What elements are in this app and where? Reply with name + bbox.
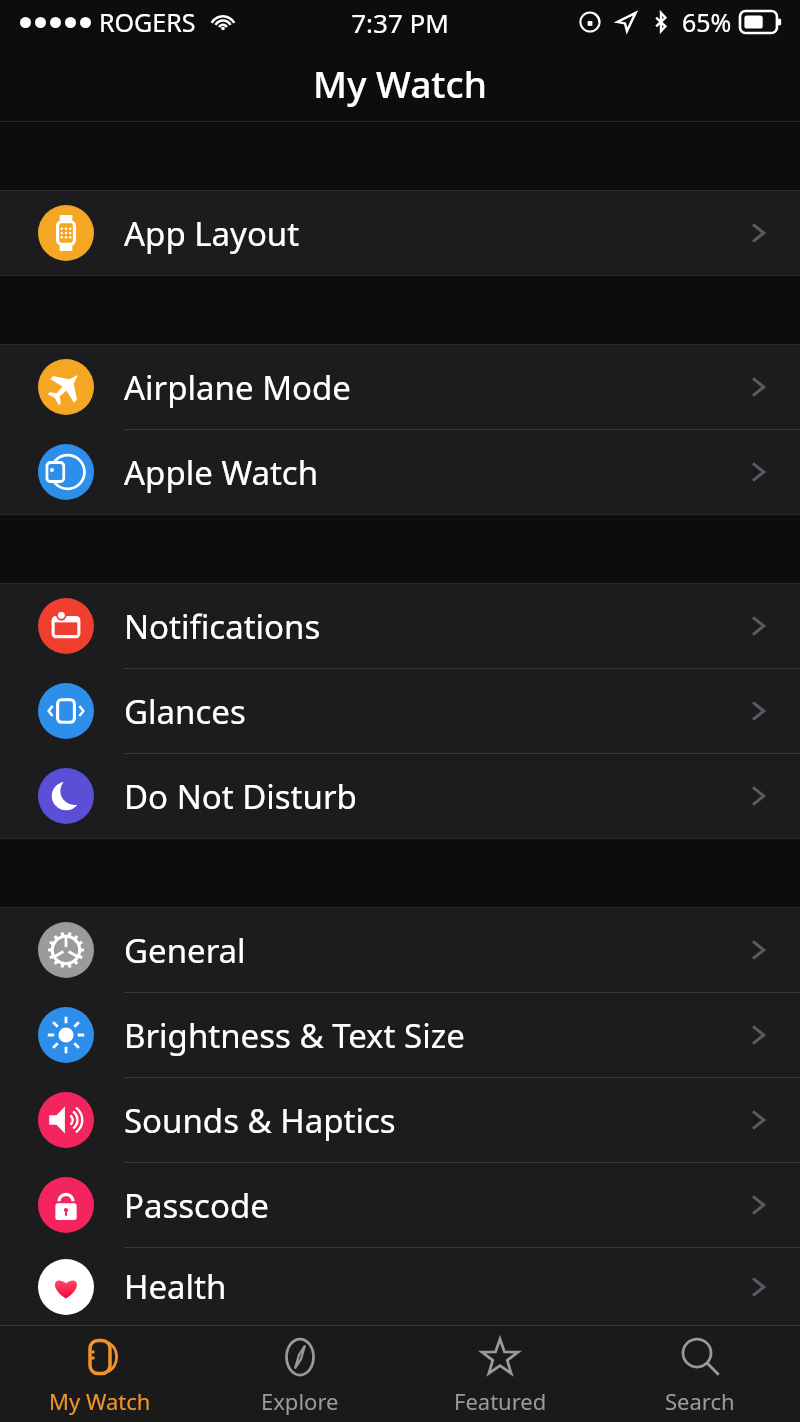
staticText: Explore: [261, 1386, 339, 1416]
staticText: 65%: [682, 5, 732, 39]
button[interactable]: App Layout: [0, 191, 800, 275]
staticText: Do Not Disturb: [124, 774, 357, 819]
button[interactable]: Glances: [0, 669, 800, 753]
button[interactable]: General: [0, 908, 800, 992]
staticText: ROGERS: [99, 5, 196, 39]
button[interactable]: Airplane Mode: [0, 345, 800, 429]
button[interactable]: Notifications: [0, 584, 800, 668]
staticText: Featured: [454, 1386, 547, 1416]
other: My Watch: [75, 1332, 125, 1382]
button[interactable]: Featured: [400, 1326, 600, 1422]
button[interactable]: Brightness & Text Size: [0, 993, 800, 1077]
staticText: Notifications: [124, 604, 321, 649]
staticText: Sounds & Haptics: [124, 1098, 396, 1143]
button[interactable]: Sounds & Haptics: [0, 1078, 800, 1162]
other: Search: [675, 1332, 725, 1382]
button[interactable]: Explore: [200, 1326, 400, 1422]
staticText: Passcode: [124, 1183, 269, 1228]
button[interactable]: Apple Watch: [0, 430, 800, 514]
staticText: Glances: [124, 689, 246, 734]
staticText: Health: [124, 1264, 227, 1309]
button[interactable]: Passcode: [0, 1163, 800, 1247]
staticText: My Watch: [313, 58, 487, 108]
staticText: My Watch: [49, 1386, 151, 1416]
other: Explore: [275, 1332, 325, 1382]
staticText: 7:37 PM: [351, 5, 449, 40]
staticText: App Layout: [124, 211, 300, 256]
staticText: Brightness & Text Size: [124, 1013, 465, 1058]
staticText: Airplane Mode: [124, 365, 351, 410]
button[interactable]: Health: [0, 1248, 800, 1325]
staticText: General: [124, 928, 246, 973]
staticText: Search: [665, 1386, 735, 1416]
staticText: Apple Watch: [124, 450, 319, 495]
other: Featured: [475, 1332, 525, 1382]
button[interactable]: Do Not Disturb: [0, 754, 800, 838]
button[interactable]: My Watch: [0, 1326, 200, 1422]
button[interactable]: Search: [600, 1326, 800, 1422]
